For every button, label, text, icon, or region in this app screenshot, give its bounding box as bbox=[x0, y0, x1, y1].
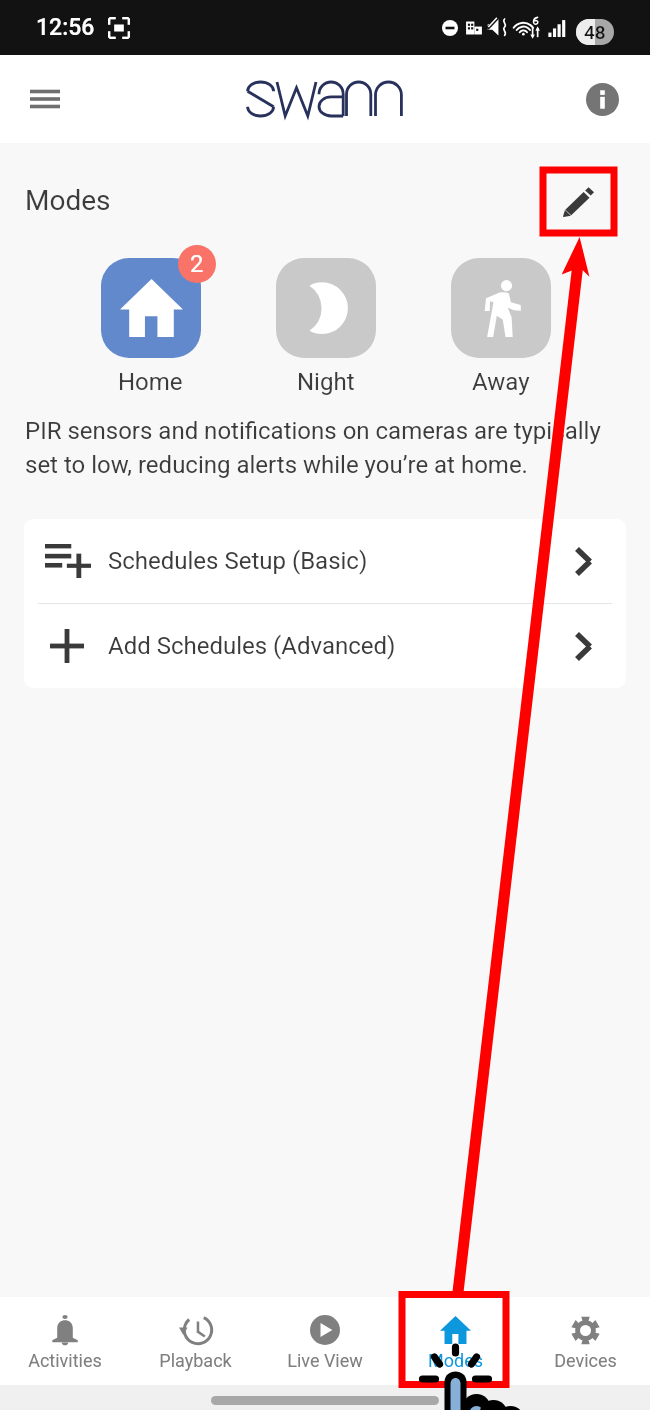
button[interactable]: Night bbox=[238, 258, 413, 398]
staticText: Add Schedules (Advanced) bbox=[108, 632, 396, 660]
other: swann bbox=[246, 82, 403, 116]
button[interactable]: Open navigation menu bbox=[20, 74, 70, 124]
staticText: 12:56 bbox=[36, 14, 95, 41]
button[interactable]: Playback bbox=[130, 1297, 260, 1385]
staticText: PIR sensors and notifications on cameras… bbox=[25, 417, 636, 479]
staticText: Away bbox=[472, 368, 530, 396]
staticText: Modes bbox=[428, 1350, 483, 1371]
button[interactable]: Away bbox=[413, 258, 588, 398]
staticText: Playback bbox=[159, 1350, 232, 1371]
staticText: Schedules Setup (Basic) bbox=[108, 547, 368, 575]
staticText: Activities bbox=[28, 1350, 102, 1371]
button[interactable]: Devices bbox=[520, 1297, 650, 1385]
staticText: Night bbox=[297, 368, 355, 396]
button[interactable]: Schedules Setup (Basic) bbox=[24, 519, 626, 603]
button[interactable]: 2 bbox=[63, 258, 238, 398]
button[interactable]: Activities bbox=[0, 1297, 130, 1385]
staticText: Devices bbox=[554, 1350, 617, 1371]
button[interactable]: Information bbox=[582, 79, 622, 119]
button[interactable]: Add Schedules (Advanced) bbox=[24, 604, 626, 688]
button[interactable]: Live View bbox=[260, 1297, 390, 1385]
staticText: 48 bbox=[584, 21, 606, 43]
staticText: Modes bbox=[25, 184, 111, 217]
staticText: Live View bbox=[287, 1350, 363, 1371]
staticText: Home bbox=[118, 368, 183, 396]
button[interactable]: Edit modes bbox=[543, 170, 614, 233]
staticText: 2 bbox=[190, 250, 204, 278]
button[interactable]: Modes bbox=[390, 1297, 520, 1385]
